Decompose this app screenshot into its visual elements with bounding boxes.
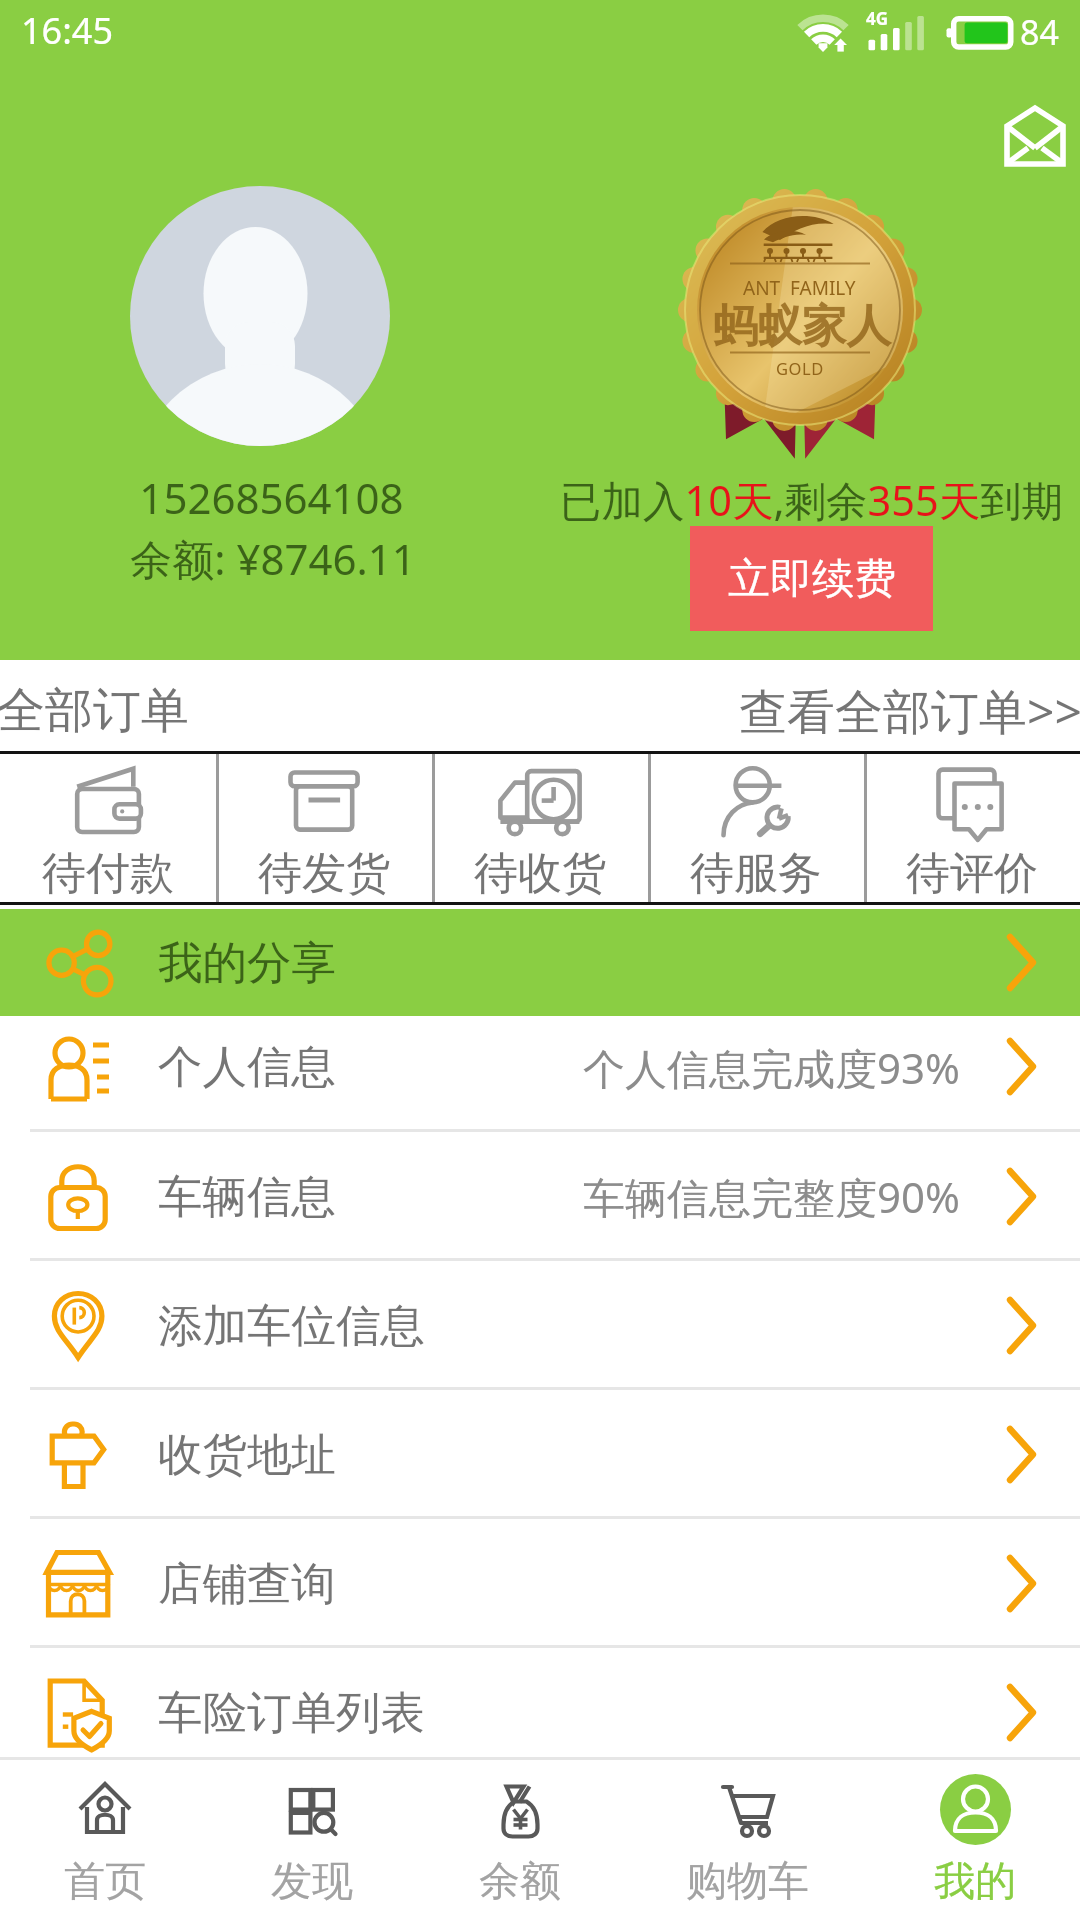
staticText: 立即续费 — [728, 553, 896, 606]
staticText: 店铺查询 — [158, 1556, 336, 1612]
staticText: 余额: ¥8746.11 — [0, 530, 546, 587]
button[interactable]: 车辆信息 — [0, 1132, 1080, 1261]
staticText: 16:45 — [21, 6, 114, 55]
button[interactable]: 待服务 — [648, 754, 864, 902]
staticText: 待评价 — [906, 846, 1038, 901]
button[interactable]: Messages — [1001, 102, 1067, 168]
staticText: 添加车位信息 — [158, 1298, 425, 1354]
staticText: GOLD — [776, 357, 824, 379]
staticText: 个人信息 — [158, 1039, 336, 1095]
button[interactable]: 全部订单 — [0, 660, 1080, 751]
staticText: 待发货 — [258, 846, 390, 901]
staticText: 我的分享 — [158, 935, 336, 991]
button[interactable]: 添加车位信息 — [0, 1261, 1080, 1390]
button[interactable]: 我的分享 — [0, 909, 1080, 1016]
staticText: 车险订单列表 — [158, 1685, 425, 1741]
staticText: 查看全部订单>> — [739, 678, 1080, 744]
button[interactable]: 我的 — [934, 1760, 1016, 1908]
staticText: 蚂蚁家人 — [713, 298, 891, 354]
button[interactable]: 立即续费 — [690, 526, 933, 631]
staticText: 个人信息完成度93% — [583, 1039, 960, 1096]
button[interactable]: 购物车 — [686, 1760, 809, 1908]
staticText: ANT FAMILY — [743, 275, 856, 301]
staticText: 待收货 — [474, 846, 606, 901]
staticText: 车辆信息完整度90% — [583, 1168, 960, 1225]
staticText: 车辆信息 — [158, 1169, 336, 1225]
staticText: 全部订单 — [0, 681, 189, 741]
staticText: 4G — [866, 7, 889, 30]
staticText: 余额 — [479, 1856, 561, 1908]
button[interactable]: 店铺查询 — [0, 1519, 1080, 1648]
button[interactable]: 待发货 — [216, 754, 432, 902]
staticText: 待服务 — [690, 846, 822, 901]
button[interactable]: 车险订单列表 — [0, 1648, 1080, 1757]
staticText: 待付款 — [42, 846, 174, 901]
staticText: 15268564108 — [0, 469, 543, 526]
button[interactable]: 待收货 — [432, 754, 648, 902]
button[interactable]: Avatar — [130, 186, 390, 446]
button[interactable]: 收货地址 — [0, 1390, 1080, 1519]
button[interactable]: 发现 — [271, 1760, 353, 1908]
staticText: 已加入10天,剩余355天到期 — [560, 472, 1064, 529]
button[interactable]: 余额 — [479, 1760, 561, 1908]
staticText: 收货地址 — [158, 1427, 336, 1483]
button[interactable]: 首页 — [64, 1760, 146, 1908]
staticText: 发现 — [271, 1856, 353, 1908]
staticText: 首页 — [64, 1856, 146, 1908]
button[interactable]: 个人信息 — [0, 1016, 1080, 1132]
staticText: 我的 — [934, 1856, 1016, 1908]
staticText: 购物车 — [686, 1856, 809, 1908]
button[interactable]: 待评价 — [864, 754, 1080, 902]
button[interactable]: 待付款 — [0, 754, 216, 902]
staticText: 84 — [1020, 9, 1059, 55]
